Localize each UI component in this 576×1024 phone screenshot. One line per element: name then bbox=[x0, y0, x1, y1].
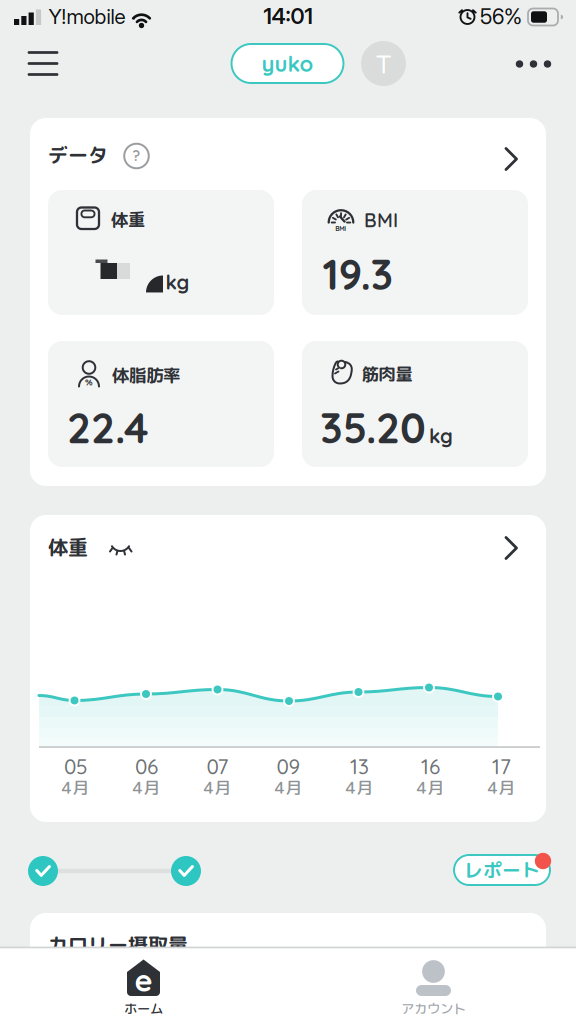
staticText: T bbox=[375, 47, 391, 80]
button[interactable]: More bbox=[509, 49, 557, 79]
staticText: 4月 bbox=[132, 776, 160, 799]
staticText: % bbox=[85, 376, 93, 388]
staticText: カロリー摂取量 bbox=[48, 931, 188, 959]
button[interactable]: アカウント bbox=[288, 947, 576, 1024]
staticText: BMI bbox=[364, 208, 398, 232]
button[interactable]: 体重 bbox=[48, 190, 274, 315]
staticText: 筋肉量 bbox=[361, 362, 412, 386]
staticText: 14:01 bbox=[263, 3, 312, 29]
button[interactable]: % bbox=[48, 341, 274, 467]
staticText: 07 bbox=[206, 754, 228, 779]
staticText: e bbox=[134, 961, 152, 999]
staticText: 05 bbox=[64, 754, 87, 779]
staticText: 体重 bbox=[111, 207, 145, 232]
button[interactable]: レポート bbox=[453, 854, 551, 886]
staticText: 09 bbox=[276, 754, 300, 779]
button[interactable]: Menu bbox=[21, 41, 65, 85]
staticText: 4月 bbox=[61, 776, 89, 799]
staticText: 体重 bbox=[48, 533, 88, 561]
staticText: 4月 bbox=[416, 776, 444, 799]
button[interactable]: 筋肉量 bbox=[302, 341, 528, 467]
staticText: アカウント bbox=[401, 999, 466, 1018]
staticText: 56% bbox=[480, 4, 522, 29]
staticText: 17 bbox=[492, 754, 511, 779]
staticText: ? bbox=[132, 146, 140, 165]
staticText: yuko bbox=[261, 50, 313, 77]
staticText: 4月 bbox=[274, 776, 302, 799]
staticText: Y!mobile bbox=[48, 4, 125, 29]
staticText: kg bbox=[165, 269, 189, 294]
staticText: 体脂肪率 bbox=[112, 363, 180, 387]
staticText: 13 bbox=[350, 754, 369, 779]
button[interactable]: データ bbox=[30, 132, 546, 184]
button[interactable]: 体重 bbox=[30, 522, 546, 574]
button[interactable]: BMI bbox=[302, 190, 528, 315]
staticText: BMI bbox=[335, 224, 346, 233]
staticText: レポート bbox=[464, 857, 540, 883]
staticText: 19.3 bbox=[322, 248, 393, 300]
staticText: 4月 bbox=[487, 776, 515, 799]
staticText: 35.20 bbox=[320, 401, 426, 454]
staticText: データ bbox=[48, 141, 108, 169]
button[interactable]: yuko bbox=[230, 43, 344, 84]
button[interactable]: e bbox=[0, 947, 288, 1024]
staticText: 06 bbox=[135, 754, 158, 779]
button[interactable]: Account bbox=[361, 41, 406, 86]
staticText: 16 bbox=[421, 754, 440, 779]
staticText: 4月 bbox=[345, 776, 373, 799]
staticText: ホーム bbox=[124, 999, 163, 1018]
staticText: 4月 bbox=[203, 776, 231, 799]
staticText: 22.4 bbox=[67, 401, 149, 454]
staticText: kg bbox=[429, 423, 453, 448]
